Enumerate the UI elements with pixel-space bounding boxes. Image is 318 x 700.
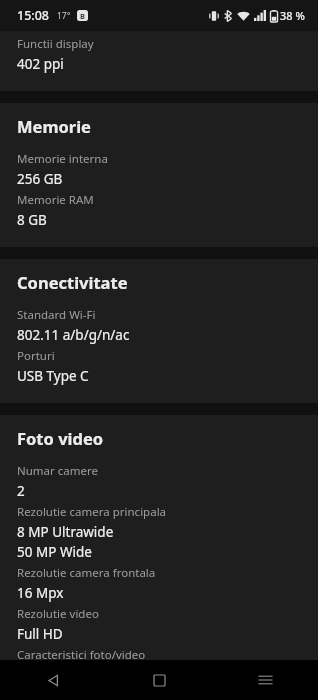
staticText: Standard Wi-Fi — [17, 307, 96, 323]
staticText: 38 % — [280, 8, 305, 23]
staticText: 17° — [57, 10, 71, 22]
staticText: 8 GB — [17, 211, 47, 229]
staticText: 256 GB — [17, 170, 63, 188]
staticText: Functii display — [17, 36, 94, 52]
button[interactable]: Rezolutie video — [0, 606, 318, 647]
staticText: Numar camere — [17, 463, 99, 479]
button[interactable]: Functii display — [0, 36, 318, 77]
staticText: Memorie interna — [17, 151, 108, 167]
button[interactable]: Memorie RAM — [0, 192, 318, 233]
button[interactable]: Rezolutie camera frontala — [0, 565, 318, 606]
button[interactable]: Back — [0, 660, 106, 700]
staticText: 16 Mpx — [17, 584, 64, 602]
staticText: 50 MP Wide — [17, 543, 92, 561]
button[interactable]: Memorie interna — [0, 151, 318, 192]
button[interactable]: Home — [106, 660, 212, 700]
staticText: Full HD — [17, 625, 63, 643]
staticText: Memorie RAM — [17, 192, 94, 208]
button[interactable]: Numar camere — [0, 463, 318, 504]
staticText: Rezolutie camera principala — [17, 504, 167, 520]
staticText: Caracteristici foto/video — [17, 647, 146, 660]
staticText: Rezolutie camera frontala — [17, 565, 156, 581]
staticText: Conectivitate — [17, 271, 128, 293]
staticText: 8 MP Ultrawide — [17, 523, 114, 541]
button[interactable]: Rezolutie camera principala — [0, 504, 318, 565]
button[interactable]: Caracteristici foto/video — [0, 647, 318, 660]
staticText: 15:08 — [17, 7, 50, 24]
staticText: Foto video — [17, 427, 104, 449]
staticText: B — [80, 11, 85, 21]
staticText: Porturi — [17, 348, 55, 364]
staticText: Rezolutie video — [17, 606, 99, 622]
button[interactable]: Porturi — [0, 348, 318, 389]
staticText: 2 — [17, 482, 25, 500]
staticText: Memorie — [17, 115, 91, 137]
staticText: 802.11 a/b/g/n/ac — [17, 326, 130, 344]
staticText: 402 ppi — [17, 55, 64, 73]
staticText: USB Type C — [17, 367, 89, 385]
button[interactable]: Standard Wi-Fi — [0, 307, 318, 348]
button[interactable]: Recent apps — [212, 660, 318, 700]
